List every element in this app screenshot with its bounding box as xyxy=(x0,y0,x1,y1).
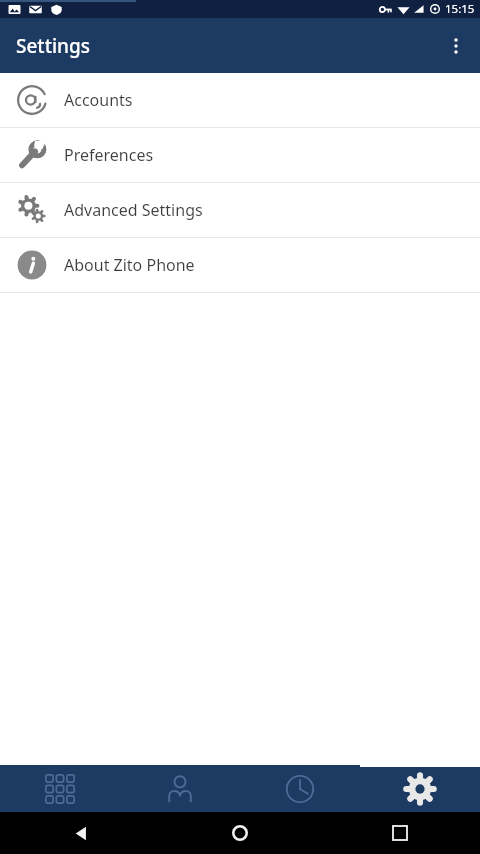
button[interactable]: Accounts xyxy=(0,73,480,127)
staticText: Preferences xyxy=(64,144,154,166)
button[interactable]: Preferences xyxy=(0,128,480,182)
staticText: Advanced Settings xyxy=(64,199,203,221)
button[interactable]: Recent apps xyxy=(320,812,480,854)
button[interactable]: Dialpad xyxy=(0,765,120,812)
button[interactable]: Home xyxy=(160,812,320,854)
staticText: Accounts xyxy=(64,89,133,111)
staticText: Settings xyxy=(16,33,90,59)
button[interactable]: About Zito Phone xyxy=(0,238,480,292)
button[interactable]: Settings xyxy=(360,765,480,812)
button[interactable]: More options xyxy=(432,22,480,70)
button[interactable]: Recents xyxy=(240,765,360,812)
button[interactable]: Contacts xyxy=(120,765,240,812)
button[interactable]: Back xyxy=(0,812,160,854)
staticText: 15:15 xyxy=(445,1,475,17)
staticText: About Zito Phone xyxy=(64,254,195,276)
button[interactable]: Advanced Settings xyxy=(0,183,480,237)
